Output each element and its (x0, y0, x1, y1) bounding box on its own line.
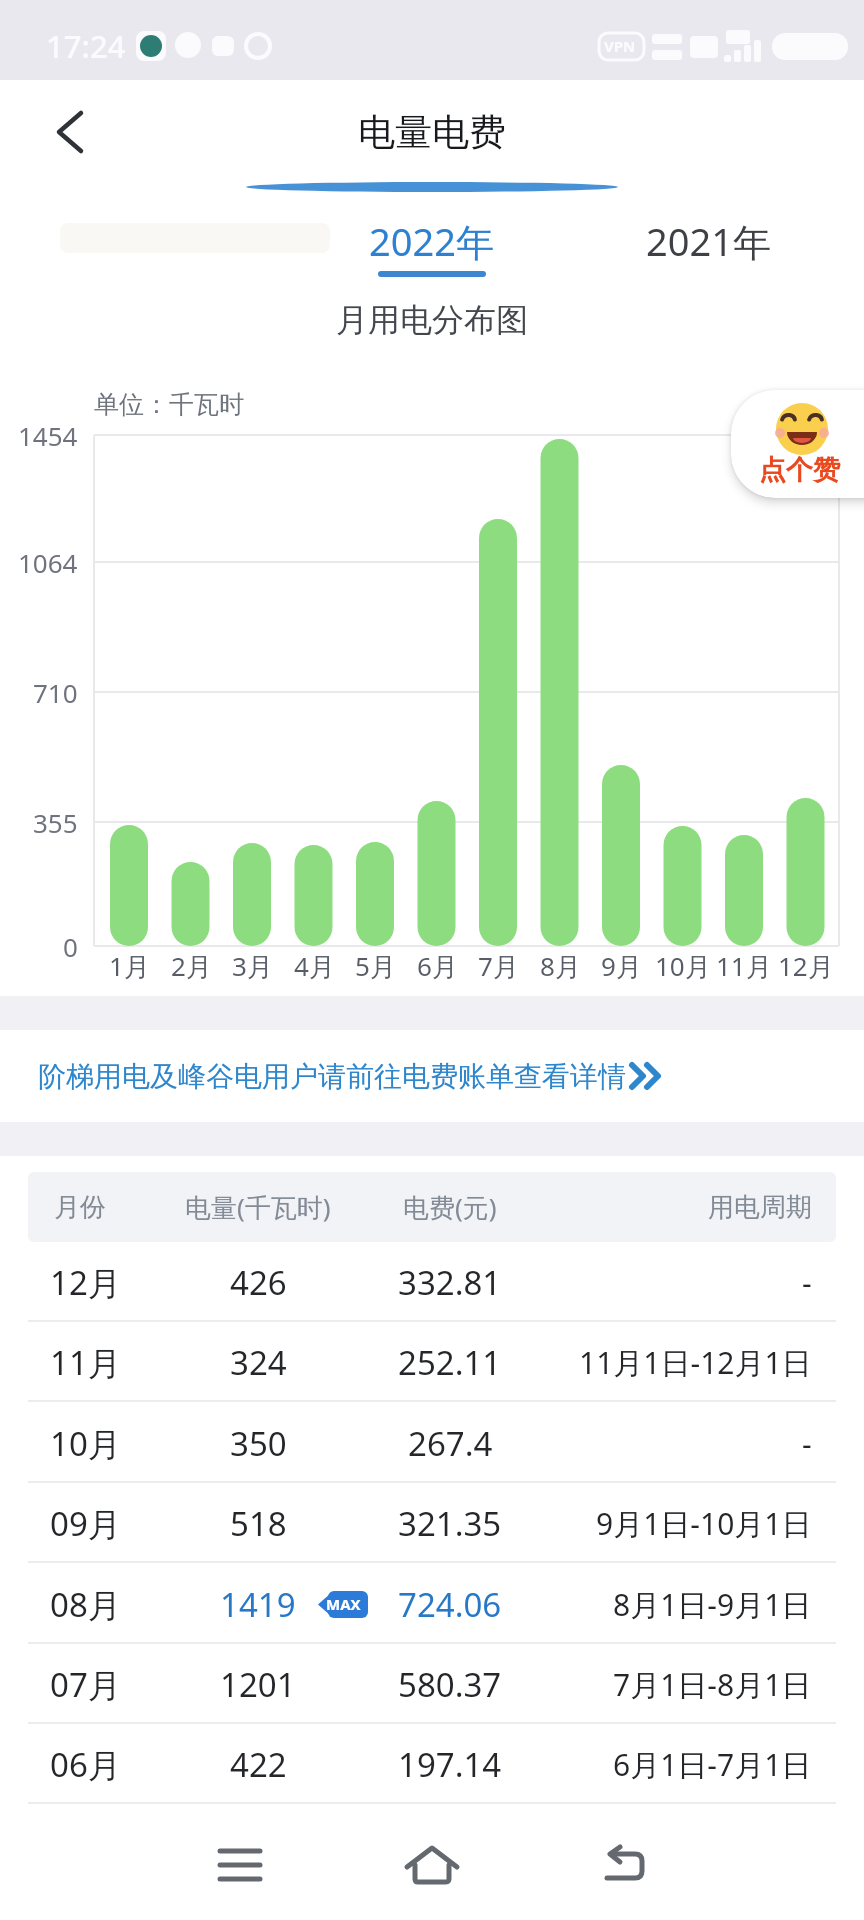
staticText: 1454 (18, 418, 78, 453)
staticText: 197.14 (398, 1742, 502, 1787)
staticText: 阶梯用电及峰谷电用户请前往电费账单查看详情 (38, 1059, 626, 1094)
staticText: 350 (230, 1421, 287, 1466)
staticText: 422 (230, 1742, 287, 1787)
staticText: 2022年 (369, 215, 494, 267)
staticText: 321.35 (398, 1501, 502, 1546)
staticText: 518 (230, 1501, 287, 1546)
staticText: 11月 (716, 948, 772, 984)
staticText: 6月1日-7月1日 (613, 1744, 812, 1785)
button[interactable]: 06月 (0, 1724, 864, 1804)
staticText: 3月 (232, 948, 273, 984)
staticText: 5月 (355, 948, 396, 984)
staticText: 332.81 (398, 1260, 502, 1305)
button[interactable] (382, 1817, 482, 1912)
staticText: 点个赞 (759, 453, 840, 487)
staticText: 267.4 (408, 1421, 493, 1466)
staticText: 电量(千瓦时) (185, 1189, 331, 1225)
staticText: - (802, 1262, 812, 1303)
staticText: 1419 (220, 1582, 296, 1627)
button[interactable] (30, 92, 110, 172)
staticText: 426 (230, 1260, 287, 1305)
staticText: 8月1日-9月1日 (613, 1584, 812, 1625)
staticText: 用电周期 (708, 1191, 812, 1224)
button[interactable]: 10月 (0, 1403, 864, 1483)
staticText: 724.06 (398, 1582, 502, 1627)
staticText: 月份 (54, 1191, 106, 1224)
staticText: 7月 (478, 948, 519, 984)
staticText: 8月 (540, 948, 581, 984)
staticText: 1201 (220, 1662, 296, 1707)
staticText: 710 (33, 675, 78, 710)
button[interactable] (628, 210, 788, 286)
staticText: 9月 (601, 948, 642, 984)
staticText: 252.11 (398, 1340, 502, 1385)
staticText: 2月 (171, 948, 212, 984)
button[interactable]: 09月 (0, 1483, 864, 1563)
staticText: 10月 (50, 1421, 121, 1466)
staticText: 11月1日-12月1日 (579, 1342, 812, 1383)
staticText: 7月1日-8月1日 (613, 1664, 812, 1705)
staticText: 1064 (18, 545, 78, 580)
staticText: 单位：千瓦时 (94, 389, 244, 420)
button[interactable]: 阶梯用电及峰谷电用户请前往电费账单查看详情 (0, 1030, 864, 1122)
button[interactable] (190, 1817, 290, 1912)
button[interactable]: 12月 (0, 1242, 864, 1322)
button[interactable]: 08月 (0, 1564, 864, 1644)
staticText: 11月 (50, 1340, 121, 1385)
staticText: 12月 (50, 1260, 121, 1305)
button[interactable]: 点个赞 (731, 390, 864, 498)
staticText: 2021年 (646, 215, 771, 267)
staticText: VPN (604, 36, 636, 56)
staticText: 580.37 (398, 1662, 502, 1707)
staticText: 08月 (50, 1582, 121, 1627)
staticText: 0 (63, 929, 78, 964)
staticText: 月用电分布图 (336, 300, 528, 340)
staticText: 4月 (294, 948, 335, 984)
button[interactable] (574, 1817, 674, 1912)
button[interactable] (352, 210, 512, 286)
staticText: 324 (230, 1340, 287, 1385)
staticText: 06月 (50, 1742, 121, 1787)
staticText: MAX (326, 1594, 361, 1614)
staticText: 电量电费 (358, 109, 506, 156)
staticText: - (802, 1423, 812, 1464)
button[interactable]: 07月 (0, 1644, 864, 1724)
button[interactable]: 11月 (0, 1322, 864, 1402)
staticText: 9月1日-10月1日 (596, 1503, 812, 1544)
staticText: 1月 (109, 948, 150, 984)
staticText: 6月 (417, 948, 458, 984)
staticText: 09月 (50, 1501, 121, 1546)
staticText: 12月 (778, 948, 834, 984)
staticText: 电费(元) (403, 1189, 497, 1225)
staticText: 07月 (50, 1662, 121, 1707)
staticText: 10月 (655, 948, 711, 984)
staticText: 17:24 (46, 25, 126, 67)
staticText: 355 (33, 805, 78, 840)
